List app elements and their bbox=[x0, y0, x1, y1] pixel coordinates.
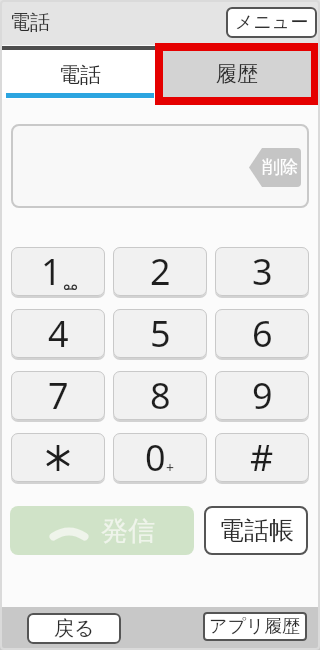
staticText: 8 bbox=[150, 371, 171, 420]
staticText: 発信 bbox=[101, 514, 155, 548]
button[interactable]: 戻る bbox=[27, 613, 121, 644]
staticText: + bbox=[166, 458, 175, 477]
button[interactable]: アプリ履歴 bbox=[203, 612, 307, 641]
button[interactable]: # bbox=[215, 433, 309, 482]
button[interactable]: 5 bbox=[113, 309, 207, 358]
staticText: 削除 bbox=[262, 156, 298, 179]
button[interactable]: 9 bbox=[215, 371, 309, 420]
button[interactable]: 履歴 bbox=[155, 43, 319, 105]
button[interactable]: 電話帳 bbox=[204, 506, 308, 555]
staticText: 履歴 bbox=[216, 61, 258, 87]
staticText: 1 bbox=[41, 247, 62, 296]
button[interactable]: 削除 bbox=[249, 148, 301, 187]
staticText: 0 bbox=[145, 433, 166, 482]
staticText: 6 bbox=[252, 309, 273, 358]
button[interactable]: 4 bbox=[11, 309, 105, 358]
staticText: 9 bbox=[252, 371, 273, 420]
button[interactable]: 電話 bbox=[2, 50, 157, 99]
button[interactable]: 2 bbox=[113, 247, 207, 296]
button[interactable]: 0 bbox=[113, 433, 207, 482]
button[interactable]: 7 bbox=[11, 371, 105, 420]
button[interactable]: 6 bbox=[215, 309, 309, 358]
staticText: アプリ履歴 bbox=[209, 615, 301, 638]
button[interactable]: 1 bbox=[11, 247, 105, 296]
staticText: 4 bbox=[48, 309, 69, 358]
staticText: 2 bbox=[150, 247, 171, 296]
button[interactable]: 発信 bbox=[10, 506, 194, 555]
staticText: 7 bbox=[48, 371, 69, 420]
staticText: メニュー bbox=[235, 11, 309, 34]
button[interactable] bbox=[11, 433, 105, 482]
staticText: 電話帳 bbox=[219, 515, 294, 546]
staticText: 電話 bbox=[10, 10, 50, 35]
staticText: 5 bbox=[150, 309, 171, 358]
button[interactable]: 3 bbox=[215, 247, 309, 296]
staticText: 戻る bbox=[54, 616, 95, 641]
button[interactable]: メニュー bbox=[226, 7, 317, 38]
button[interactable]: 8 bbox=[113, 371, 207, 420]
staticText: 電話 bbox=[59, 62, 101, 88]
staticText: 3 bbox=[252, 247, 273, 296]
staticText: # bbox=[250, 433, 274, 482]
